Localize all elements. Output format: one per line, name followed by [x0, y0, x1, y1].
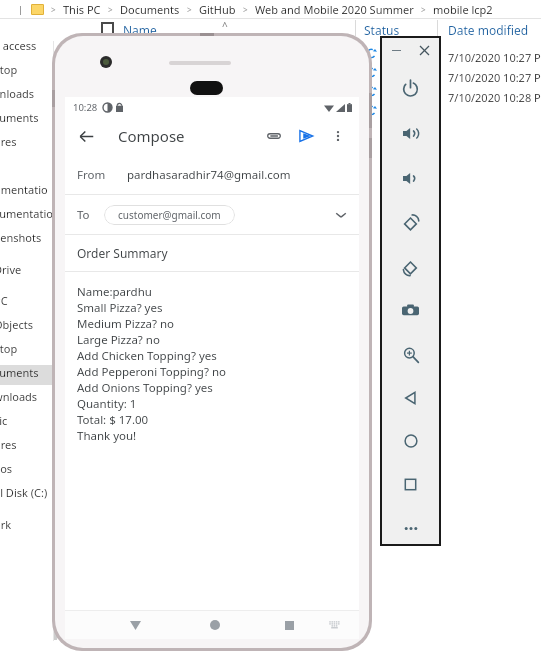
staticText: Thank you!	[77, 428, 137, 444]
button[interactable]: From	[65, 155, 359, 194]
staticText: >	[108, 4, 113, 15]
staticText: sic	[0, 413, 54, 428]
staticText: This PC	[63, 2, 101, 17]
staticText: GitHub	[199, 2, 236, 17]
staticText: Date modified	[448, 22, 529, 38]
button[interactable]: Attach file	[259, 121, 289, 151]
button[interactable]: Overview	[394, 468, 427, 501]
button[interactable]: Take screenshot	[394, 294, 427, 327]
staticText: ures	[0, 437, 54, 452]
staticText: 2	[0, 158, 54, 173]
button[interactable]: Close	[415, 41, 433, 59]
staticText: cuments	[0, 365, 54, 380]
staticText: ktop	[0, 62, 54, 77]
staticText: 10:28	[73, 101, 98, 114]
staticText: Name:pardhu	[77, 284, 152, 300]
button[interactable]: Back	[71, 121, 101, 151]
button[interactable]: More	[394, 512, 427, 545]
staticText: Large Pizza? no	[77, 332, 160, 348]
staticText: ^	[222, 19, 228, 33]
button[interactable]: Order Summary	[65, 235, 359, 271]
button[interactable]: Home	[394, 424, 427, 457]
staticText: PC	[0, 293, 54, 308]
staticText: k access	[0, 38, 54, 53]
staticText: Objects	[0, 317, 54, 332]
button[interactable]: Home	[202, 612, 228, 638]
staticText: |	[18, 3, 23, 15]
staticText: cuments	[0, 110, 54, 125]
staticText: Total: $ 17.00	[77, 412, 149, 428]
staticText: 7/10/2020 10:27 PI	[448, 50, 541, 65]
button[interactable]: More options	[323, 121, 353, 151]
button[interactable]: Name:pardhu	[65, 272, 359, 444]
staticText: Add Pepperoni Topping? no	[77, 364, 226, 380]
button[interactable]: Zoom	[394, 338, 427, 371]
staticText: Medium Pizza? no	[77, 316, 175, 332]
button[interactable]: To	[65, 195, 359, 234]
staticText: customer@gmail.com	[118, 208, 221, 222]
staticText: Add Onions Topping? yes	[77, 380, 213, 396]
staticText: From	[77, 167, 106, 183]
staticText: Quantity: 1	[77, 396, 137, 412]
button[interactable]: Minimize	[387, 41, 405, 59]
button[interactable]: Back	[394, 381, 427, 414]
staticText: vnloads	[0, 86, 54, 101]
staticText: Web and Mobile 2020 Summer	[255, 2, 414, 17]
button[interactable]: Rotate right	[394, 250, 427, 283]
staticText: ktop	[0, 341, 54, 356]
staticText: >	[421, 4, 426, 15]
staticText: Add Chicken Topping? yes	[77, 348, 217, 364]
button[interactable]: Volume down	[394, 162, 427, 195]
staticText: al Disk (C:)	[0, 485, 54, 500]
staticText: wnloads	[0, 389, 54, 404]
staticText: >	[51, 4, 56, 15]
staticText: eos	[0, 461, 54, 476]
staticText: Compose	[118, 126, 185, 146]
button[interactable]: Back	[122, 612, 148, 638]
staticText: 7/10/2020 10:27 PI	[448, 70, 541, 85]
staticText: Small Pizza? yes	[77, 300, 163, 316]
button[interactable]: Recents	[276, 612, 302, 638]
button[interactable]: Expand recipients	[327, 201, 355, 229]
staticText: >	[243, 4, 248, 15]
staticText: 7/10/2020 10:28 PI	[448, 90, 541, 105]
button[interactable]: Send	[291, 121, 321, 151]
staticText: >	[187, 4, 192, 15]
staticText: Status	[364, 22, 400, 38]
staticText: Order Summary	[77, 245, 168, 261]
staticText: Documents	[120, 2, 180, 17]
staticText: To	[77, 207, 90, 223]
staticText: mobile lcp2	[433, 2, 493, 17]
button[interactable]: Power	[394, 72, 427, 105]
staticText: umentation	[0, 182, 54, 197]
staticText: eenshots	[0, 230, 54, 245]
staticText: pardhasaradhir74@gmail.com	[127, 167, 291, 183]
button[interactable]: Rotate left	[394, 206, 427, 239]
staticText: Drive	[0, 262, 54, 277]
staticText: ures	[0, 134, 54, 149]
staticText: Name	[123, 22, 157, 38]
staticText: cumentatio	[0, 206, 54, 221]
staticText: ork	[0, 517, 54, 532]
button[interactable]: Volume up	[394, 117, 427, 150]
button[interactable]: Hide keyboard	[323, 614, 345, 636]
